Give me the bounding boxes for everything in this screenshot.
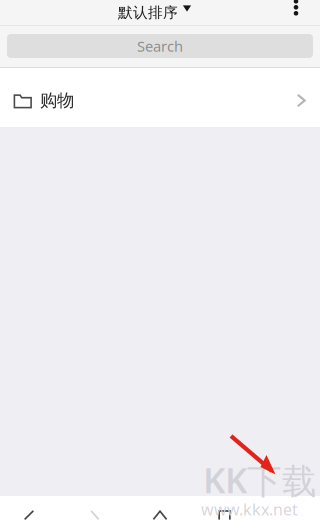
button[interactable]: Overview [188, 496, 261, 520]
button[interactable]: More options [279, 1, 320, 24]
button[interactable]: 默认排序 [110, 1, 199, 24]
staticText: Search [137, 36, 183, 56]
button[interactable]: Home [132, 496, 188, 520]
staticText: KK下载 [203, 457, 317, 503]
button[interactable]: Recent apps [58, 496, 132, 520]
button[interactable]: Search [0, 26, 320, 67]
staticText: 默认排序 [118, 3, 178, 21]
staticText: www.kkx.net [201, 499, 298, 520]
button[interactable]: 购物 [0, 68, 320, 127]
button[interactable]: Back [0, 496, 58, 520]
staticText: 购物 [40, 90, 74, 111]
